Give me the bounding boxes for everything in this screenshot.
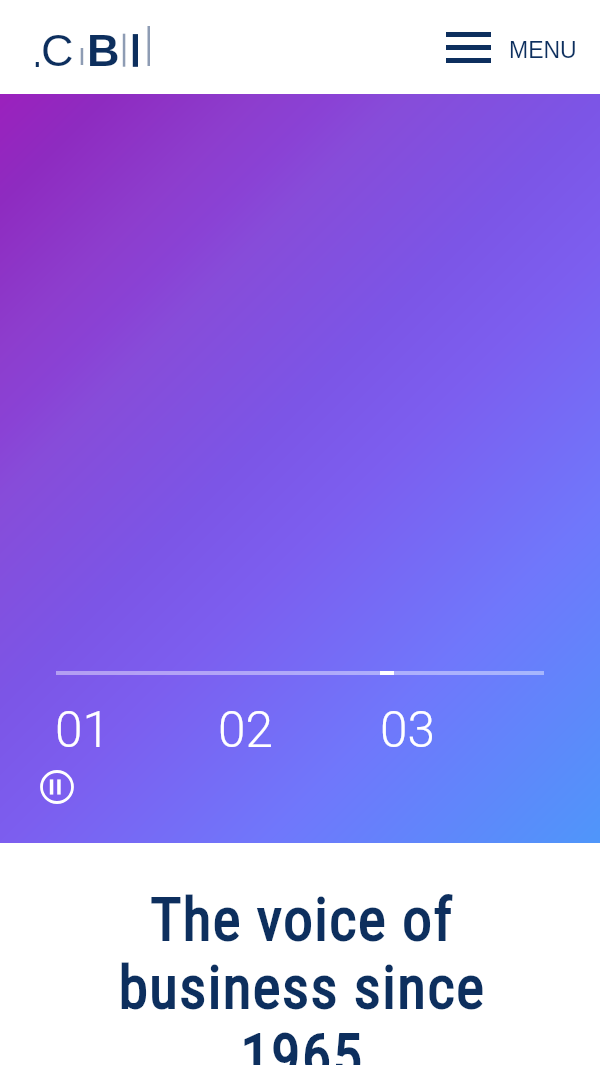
button[interactable]: 03 bbox=[380, 701, 440, 747]
staticText: 03 bbox=[380, 701, 435, 747]
staticText: B bbox=[87, 25, 120, 71]
button[interactable]: MENU bbox=[440, 24, 580, 72]
staticText: 02 bbox=[218, 701, 273, 747]
button[interactable]: 01 bbox=[55, 701, 115, 747]
button[interactable]: Pause bbox=[40, 770, 74, 804]
staticText: The voice of business since 1965 bbox=[60, 885, 544, 1065]
button[interactable]: CBI home bbox=[30, 26, 156, 72]
staticText: C bbox=[41, 25, 74, 71]
button[interactable]: 02 bbox=[218, 701, 278, 747]
staticText: MENU bbox=[509, 37, 577, 63]
staticText: 01 bbox=[55, 701, 110, 747]
